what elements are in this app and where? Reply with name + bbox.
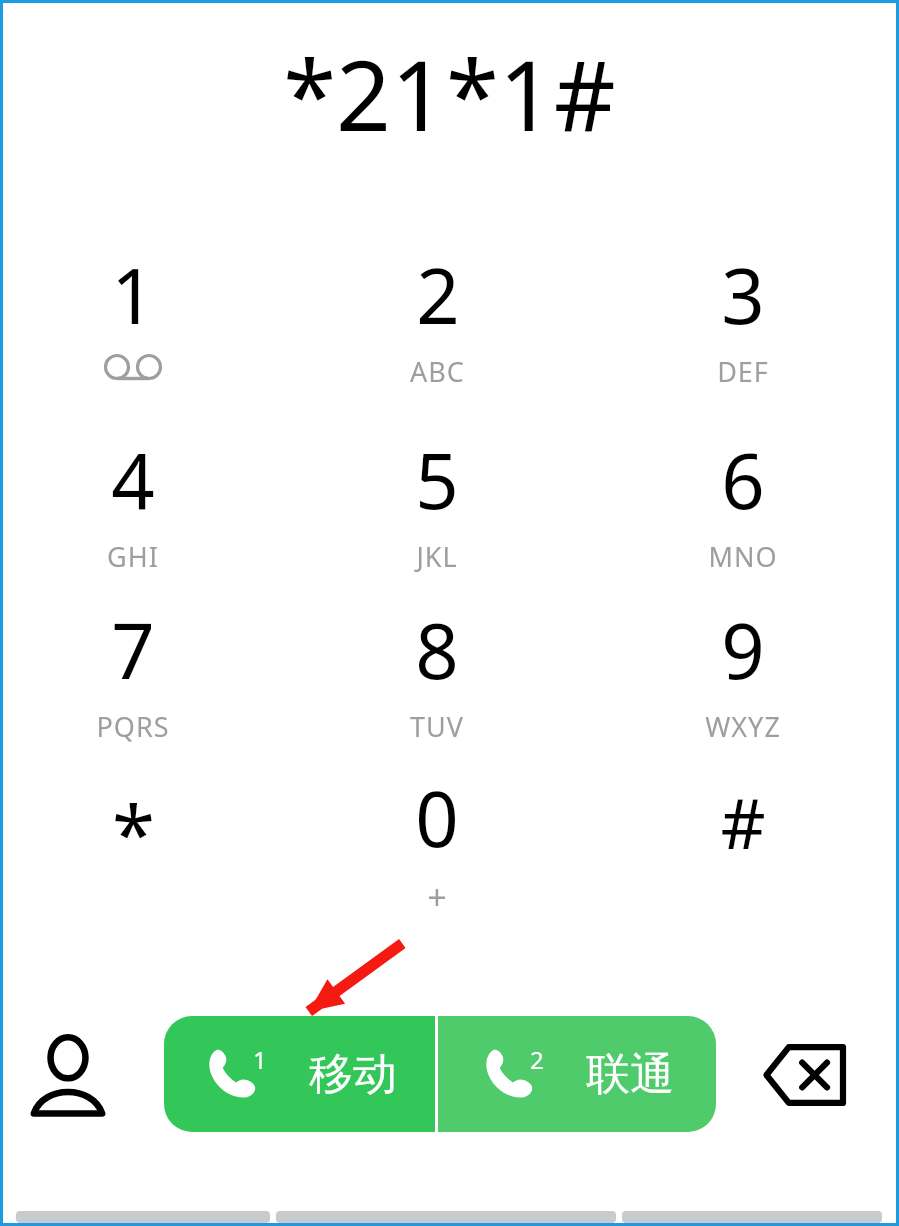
staticText: 7 [111, 598, 155, 702]
staticText: 5 [415, 428, 459, 532]
button[interactable]: 1 [164, 1016, 435, 1132]
staticText: # [720, 774, 766, 869]
staticText: 1 [111, 243, 155, 347]
button[interactable]: 6 [643, 428, 843, 578]
staticText: TUV [410, 708, 464, 745]
staticText: 移动 [309, 1047, 397, 1102]
staticText: 1 [253, 1043, 267, 1076]
staticText: PQRS [96, 708, 170, 745]
staticText: + [427, 874, 448, 916]
staticText: MNO [708, 538, 778, 575]
staticText: 0 [415, 766, 459, 870]
staticText: 9 [721, 598, 765, 702]
button[interactable]: Backspace [752, 1020, 860, 1130]
staticText: * [112, 780, 155, 886]
button[interactable]: 1 [33, 243, 233, 393]
staticText: 2 [416, 243, 460, 347]
staticText: 6 [721, 428, 765, 532]
staticText: 4 [111, 428, 155, 532]
button[interactable]: Contacts [14, 1020, 122, 1130]
staticText: 3 [721, 243, 765, 347]
button[interactable]: 5 [337, 428, 537, 578]
staticText: 联通 [586, 1047, 674, 1102]
staticText: *21*1# [283, 28, 616, 158]
button[interactable]: 2 [438, 1016, 716, 1132]
staticText: GHI [107, 538, 159, 575]
staticText: 8 [415, 598, 459, 702]
button[interactable]: 0 [337, 766, 537, 916]
button[interactable]: * [33, 766, 233, 916]
button[interactable]: 8 [337, 598, 537, 748]
button[interactable]: 3 [643, 243, 843, 393]
staticText: DEF [717, 353, 769, 390]
button[interactable]: 2 [337, 243, 537, 393]
button[interactable]: 7 [33, 598, 233, 748]
staticText: JKL [416, 538, 458, 575]
staticText: 2 [530, 1043, 544, 1076]
button[interactable]: 4 [33, 428, 233, 578]
staticText: ABC [410, 353, 465, 390]
button[interactable]: # [643, 766, 843, 916]
button[interactable]: 9 [643, 598, 843, 748]
staticText: WXYZ [705, 708, 781, 745]
